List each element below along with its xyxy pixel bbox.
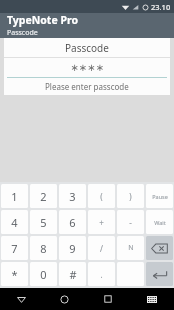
button[interactable]: + — [88, 210, 115, 234]
staticText: Passcode — [65, 41, 109, 55]
button[interactable]: 5 — [30, 210, 57, 234]
staticText: 0 — [40, 267, 47, 282]
button[interactable]: - — [117, 210, 144, 234]
staticText: . — [100, 269, 103, 280]
button[interactable]: Passcode — [4, 38, 170, 57]
staticText: * — [11, 267, 18, 282]
staticText: ( — [100, 191, 103, 202]
button[interactable]: ) — [117, 184, 144, 208]
button[interactable]: Back — [0, 288, 43, 310]
button[interactable]: 2 — [30, 184, 57, 208]
staticText: / — [100, 243, 103, 254]
staticText: Please enter passcode — [45, 81, 129, 92]
button[interactable]: ∗∗∗∗ — [4, 58, 170, 77]
staticText: 1 — [11, 189, 18, 204]
button[interactable]: 6 — [59, 210, 86, 234]
staticText: - — [129, 217, 132, 228]
button[interactable]: . — [88, 262, 115, 286]
button[interactable]: Recents — [86, 288, 130, 310]
staticText: + — [99, 217, 104, 228]
staticText: 9 — [69, 241, 76, 256]
button[interactable]: N — [117, 236, 144, 260]
button[interactable]: Home — [43, 288, 86, 310]
button[interactable]: 9 — [59, 236, 86, 260]
staticText: Wait — [154, 219, 166, 226]
staticText: 3 — [69, 189, 76, 204]
button[interactable]: * — [1, 262, 28, 286]
staticText: ∗∗∗∗ — [70, 62, 104, 74]
button[interactable]: Wait — [146, 210, 173, 234]
staticText: 6 — [69, 215, 76, 230]
button[interactable]: 7 — [1, 236, 28, 260]
button[interactable]: 1 — [1, 184, 28, 208]
staticText: Passcode — [7, 28, 38, 38]
staticText: 7 — [11, 241, 18, 256]
staticText: Pause — [152, 193, 168, 200]
button[interactable]: 8 — [30, 236, 57, 260]
staticText: TypeNote Pro — [7, 13, 78, 27]
staticText: 2 — [40, 189, 47, 204]
button[interactable]: 4 — [1, 210, 28, 234]
button[interactable]: Backspace — [146, 236, 173, 260]
button[interactable]: / — [88, 236, 115, 260]
button[interactable]: Pause — [146, 184, 173, 208]
staticText: 5 — [40, 215, 47, 230]
button[interactable]: Enter — [146, 262, 173, 286]
staticText: 23.10 — [151, 2, 171, 12]
staticText: 8 — [40, 241, 47, 256]
staticText: N — [128, 243, 134, 253]
button[interactable]: ( — [88, 184, 115, 208]
button[interactable]: 3 — [59, 184, 86, 208]
button[interactable]: 0 — [30, 262, 57, 286]
button[interactable]: Switch keyboard — [130, 288, 174, 310]
staticText: 4 — [11, 215, 18, 230]
staticText: # — [69, 267, 77, 282]
staticText: ) — [129, 191, 132, 202]
button[interactable]: # — [59, 262, 86, 286]
